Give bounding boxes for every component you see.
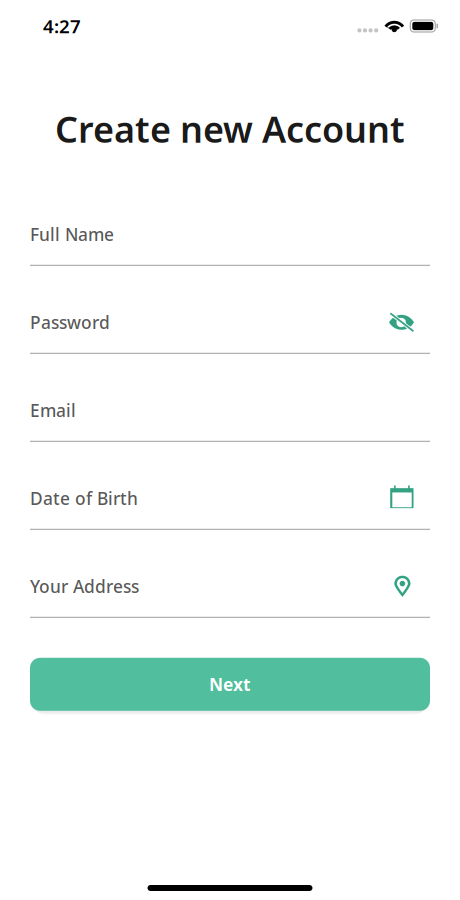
staticText: Your Address bbox=[30, 575, 139, 598]
staticText: Create new Account bbox=[55, 105, 405, 153]
staticText: Full Name bbox=[30, 223, 114, 246]
button[interactable]: Full Name bbox=[30, 221, 430, 266]
button[interactable]: Email bbox=[30, 397, 430, 442]
button[interactable]: Date of Birth bbox=[30, 485, 430, 530]
staticText: 4:27 bbox=[43, 14, 81, 38]
button[interactable]: Your Address bbox=[30, 573, 430, 618]
button[interactable]: Password bbox=[30, 309, 430, 354]
staticText: Email bbox=[30, 399, 76, 422]
staticText: Password bbox=[30, 311, 110, 334]
staticText: Next bbox=[209, 673, 251, 696]
button[interactable]: Next bbox=[30, 658, 430, 711]
staticText: Date of Birth bbox=[30, 487, 138, 510]
